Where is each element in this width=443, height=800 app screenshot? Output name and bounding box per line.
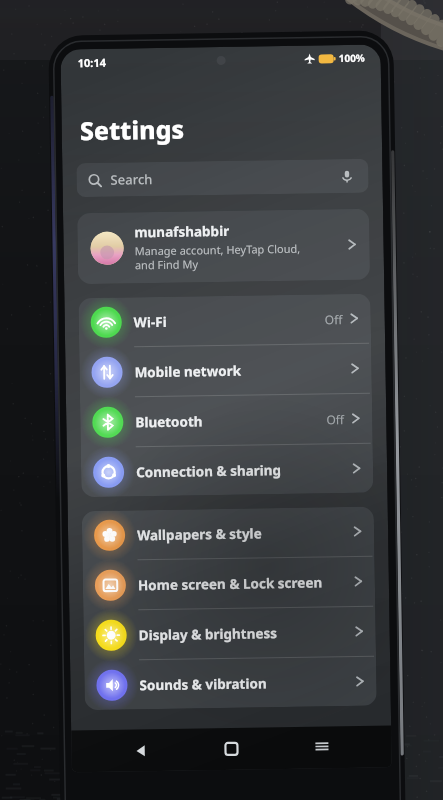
staticText: Settings (79, 111, 185, 147)
staticText: Wallpapers & style (137, 523, 353, 544)
button[interactable]: Mobile network (79, 344, 372, 397)
staticText: Home screen & Lock screen (138, 573, 354, 594)
staticText: Display & brightness (138, 623, 355, 644)
staticText: Connection & sharing (136, 460, 352, 481)
staticText: Search (110, 170, 153, 189)
button[interactable]: Wi-Fi (78, 294, 371, 347)
button[interactable]: Recent apps (301, 727, 342, 768)
staticText: Manage account, HeyTap Cloud, and Find M… (134, 241, 301, 272)
staticText: Off (325, 311, 343, 327)
button[interactable]: munafshabbir (77, 209, 370, 284)
button[interactable]: Sounds & vibration (84, 657, 377, 710)
staticText: Wi-Fi (134, 310, 325, 331)
button[interactable]: Voice search (336, 166, 357, 186)
button[interactable]: Wallpapers & style (82, 507, 374, 560)
button[interactable]: Home (211, 729, 252, 769)
button[interactable]: Bluetooth (80, 394, 373, 447)
staticText: munafshabbir (134, 222, 229, 241)
button[interactable]: Home screen & Lock screen (82, 557, 375, 610)
button[interactable]: Display & brightness (83, 607, 376, 660)
button[interactable]: Search (76, 159, 369, 197)
button[interactable]: Back (121, 730, 162, 771)
staticText: Bluetooth (135, 410, 326, 431)
button[interactable]: Connection & sharing (81, 444, 373, 497)
staticText: 10:14 (78, 55, 107, 70)
staticText: 100% (338, 51, 366, 65)
staticText: Mobile network (134, 360, 351, 381)
staticText: Off (326, 411, 344, 427)
staticText: Sounds & vibration (139, 673, 356, 694)
